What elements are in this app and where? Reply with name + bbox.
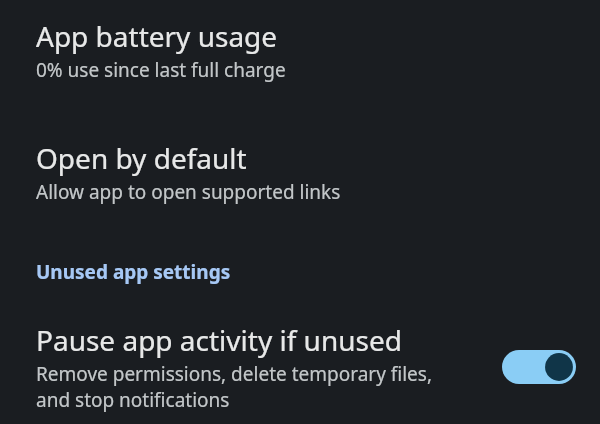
staticText: Open by default — [36, 139, 247, 177]
button[interactable]: Open by default — [0, 136, 600, 208]
button[interactable]: App battery usage — [0, 14, 600, 86]
staticText: Pause app activity if unused — [36, 321, 402, 359]
button[interactable]: Toggle pause app activity if unused — [502, 350, 576, 384]
button[interactable]: Unused app settings — [0, 256, 600, 288]
button[interactable]: Pause app activity if unused — [0, 321, 600, 412]
staticText: Remove permissions, delete temporary fil… — [36, 361, 460, 412]
staticText: 0% use since last full charge — [36, 57, 286, 83]
staticText: Allow app to open supported links — [36, 179, 341, 205]
staticText: Unused app settings — [36, 259, 231, 285]
staticText: App battery usage — [36, 17, 278, 55]
